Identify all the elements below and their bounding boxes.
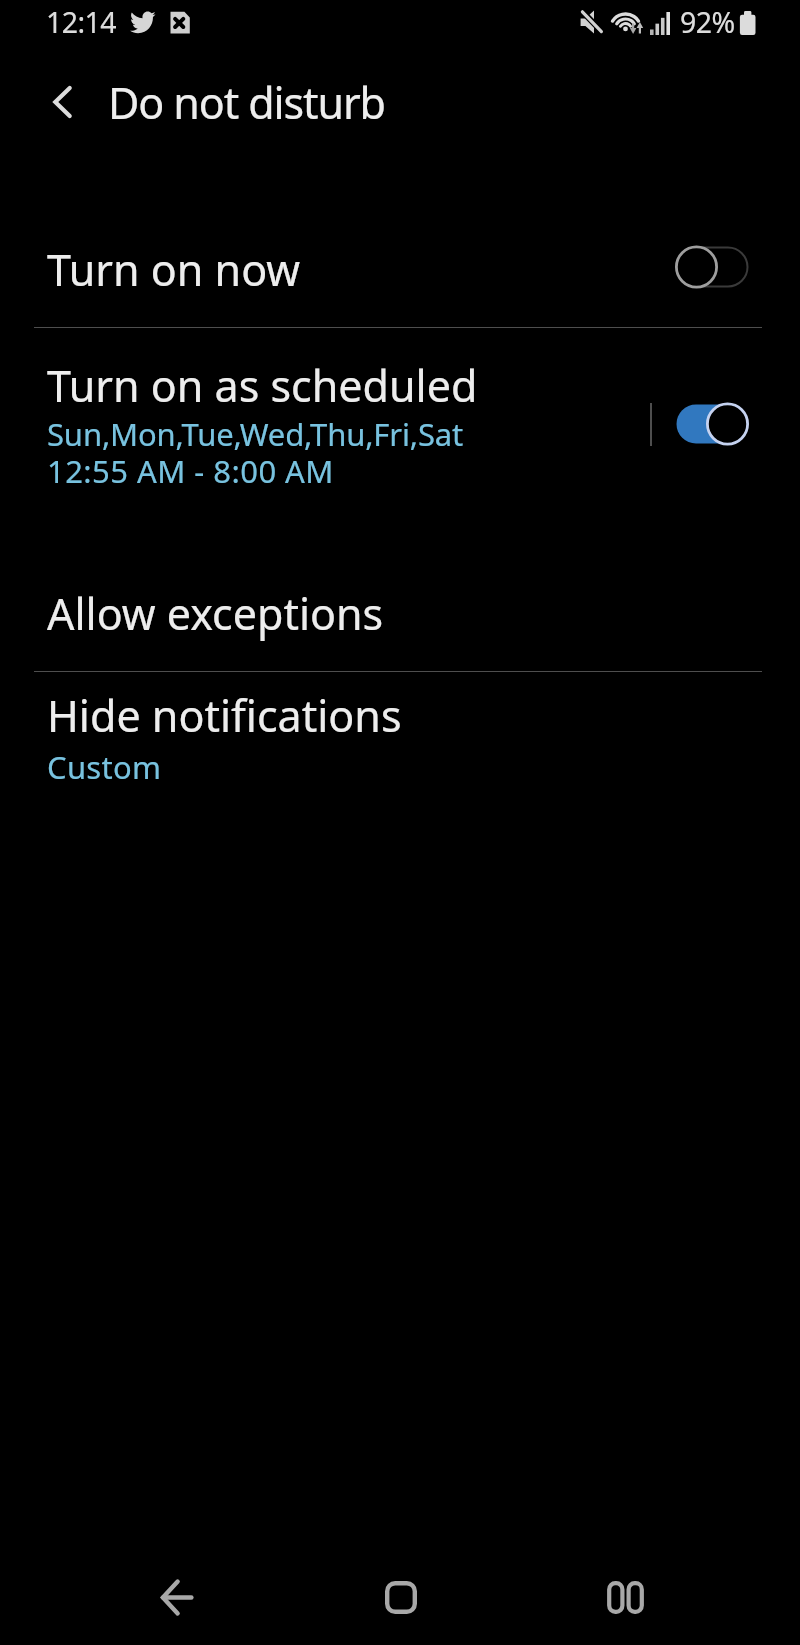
staticText: Allow exceptions: [47, 584, 384, 643]
button[interactable]: Recent apps: [585, 1557, 665, 1637]
button[interactable]: Home: [361, 1557, 441, 1637]
button[interactable]: Back: [137, 1557, 217, 1637]
staticText: Turn on as scheduled: [47, 356, 478, 415]
button[interactable]: Navigate up: [32, 72, 92, 132]
button[interactable]: Turn on: [670, 239, 758, 295]
button[interactable]: Allow exceptions: [0, 562, 800, 670]
button[interactable]: Turn on as scheduled: [0, 334, 800, 512]
staticText: Custom: [47, 746, 162, 788]
staticText: 12:55 AM - 8:00 AM: [47, 450, 334, 492]
staticText: 12:14: [46, 3, 116, 42]
button[interactable]: Turn off: [670, 396, 758, 452]
staticText: Sun,Mon,Tue,Wed,Thu,Fri,Sat: [47, 413, 464, 455]
button[interactable]: Hide notifications: [0, 664, 800, 806]
staticText: Do not disturb: [108, 73, 385, 132]
staticText: Hide notifications: [47, 686, 402, 745]
button[interactable]: Turn on now: [0, 218, 800, 326]
staticText: Turn on now: [47, 240, 301, 299]
staticText: 92%: [680, 3, 735, 42]
